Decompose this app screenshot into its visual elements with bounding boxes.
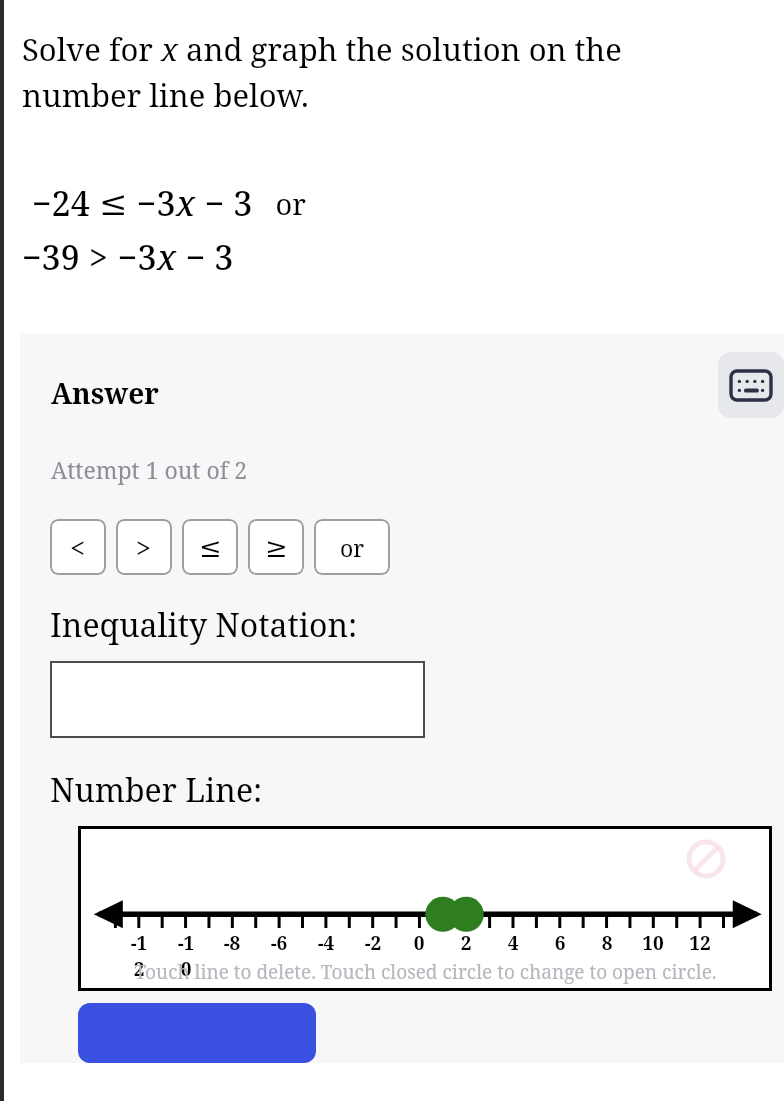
staticText: number line below.: [22, 74, 309, 116]
staticText: ≤: [99, 183, 128, 223]
staticText: and graph the solution on the: [178, 28, 622, 70]
staticText: x: [157, 234, 177, 280]
staticText: 4: [500, 930, 526, 956]
staticText: >: [89, 234, 109, 280]
staticText: or: [340, 532, 365, 563]
button[interactable]: Number line graph: [78, 826, 772, 991]
staticText: 6: [547, 930, 573, 956]
staticText: -2: [360, 930, 386, 956]
staticText: ≤: [199, 532, 222, 563]
staticText: x: [176, 180, 196, 226]
staticText: − 3: [196, 180, 253, 226]
staticText: -12: [126, 930, 152, 982]
staticText: Touch line to delete. Touch closed circl…: [134, 959, 717, 985]
button[interactable]: <: [50, 519, 106, 575]
staticText: Number Line:: [50, 768, 263, 812]
staticText: 2: [453, 930, 479, 956]
staticText: −3: [109, 234, 157, 280]
staticText: <: [70, 529, 86, 566]
button[interactable]: Open math keyboard: [718, 352, 784, 418]
staticText: Attempt 1 out of 2: [51, 454, 248, 485]
staticText: 12: [687, 930, 713, 956]
staticText: ≥: [265, 532, 288, 563]
button[interactable]: >: [116, 519, 172, 575]
button[interactable]: ≤: [182, 519, 238, 575]
staticText: 8: [594, 930, 620, 956]
staticText: >: [136, 529, 152, 566]
staticText: -10: [173, 930, 199, 982]
staticText: −24: [32, 180, 99, 226]
staticText: or: [253, 184, 307, 223]
button[interactable]: ≥: [248, 519, 304, 575]
staticText: 0: [406, 930, 432, 956]
staticText: -8: [219, 930, 245, 956]
staticText: − 3: [177, 234, 234, 280]
staticText: -4: [313, 930, 339, 956]
staticText: Inequality Notation:: [50, 603, 358, 647]
staticText: Answer: [51, 374, 159, 412]
staticText: −3: [128, 180, 176, 226]
button[interactable]: Inequality notation input: [50, 661, 425, 738]
staticText: 10: [640, 930, 666, 956]
staticText: x: [161, 28, 178, 70]
button[interactable]: or: [314, 519, 390, 575]
staticText: -6: [266, 930, 292, 956]
staticText: −39: [22, 234, 89, 280]
button[interactable]: Submit answer: [78, 1003, 316, 1063]
staticText: Solve for: [22, 28, 161, 70]
